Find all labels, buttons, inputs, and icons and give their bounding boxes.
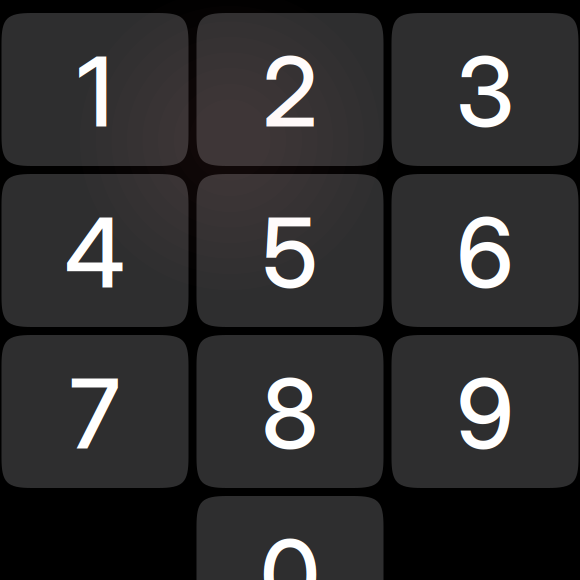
staticText: 2 xyxy=(262,33,317,150)
staticText: 4 xyxy=(64,194,125,311)
staticText: 5 xyxy=(262,194,318,311)
button[interactable]: 0 xyxy=(196,496,383,580)
button[interactable]: 5 xyxy=(196,174,383,327)
staticText: 6 xyxy=(456,194,513,311)
staticText: 8 xyxy=(261,355,318,472)
staticText: 3 xyxy=(456,33,514,150)
button[interactable]: 2 xyxy=(196,13,383,166)
staticText: 0 xyxy=(260,516,320,580)
button[interactable]: 8 xyxy=(196,335,383,488)
button[interactable]: 1 xyxy=(1,13,188,166)
button[interactable]: 7 xyxy=(1,335,188,488)
button[interactable]: 6 xyxy=(391,174,578,327)
staticText: 1 xyxy=(77,33,113,150)
staticText: 7 xyxy=(69,355,120,472)
staticText: 9 xyxy=(456,355,513,472)
button[interactable]: 9 xyxy=(391,335,578,488)
button[interactable]: 4 xyxy=(1,174,188,327)
button[interactable]: 3 xyxy=(391,13,578,166)
